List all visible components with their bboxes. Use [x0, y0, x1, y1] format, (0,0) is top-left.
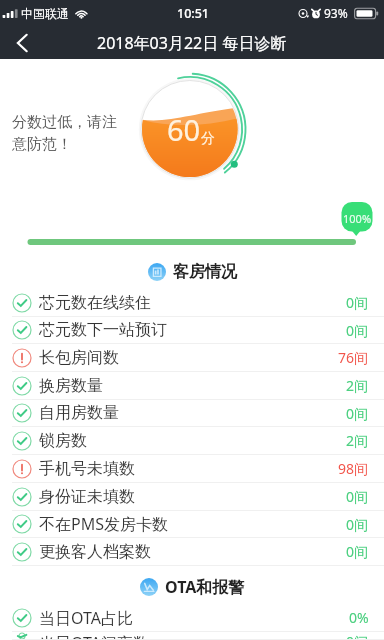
staticText: 手机号未填数: [39, 459, 135, 479]
button[interactable]: 不在PMS发房卡数: [0, 511, 384, 538]
staticText: 0间: [346, 487, 369, 506]
staticText: 芯元数下一站预订: [39, 320, 167, 340]
staticText: 身份证未填数: [39, 487, 135, 507]
staticText: 当日OTA占比: [39, 607, 134, 629]
staticText: 0%: [349, 608, 369, 627]
staticText: 10:51: [177, 5, 210, 22]
staticText: 分数过低，请注 意防范！: [12, 113, 117, 153]
staticText: 2间: [346, 376, 369, 395]
button[interactable]: 当日OTA间夜数: [0, 632, 384, 640]
staticText: 自用房数量: [39, 403, 119, 423]
staticText: 当日OTA间夜数: [39, 632, 150, 640]
staticText: 93%: [324, 5, 348, 21]
button[interactable]: 身份证未填数: [0, 483, 384, 511]
button[interactable]: 芯元数下一站预订: [0, 317, 384, 344]
button[interactable]: Back: [0, 26, 44, 59]
staticText: 0间: [346, 321, 369, 340]
staticText: 0间: [346, 515, 369, 534]
staticText: OTA和报警: [165, 576, 245, 598]
staticText: 100%: [343, 211, 372, 226]
staticText: 98间: [338, 459, 369, 478]
button[interactable]: 芯元数在线续住: [0, 289, 384, 317]
staticText: 换房数量: [39, 376, 103, 396]
button[interactable]: 当日OTA占比: [0, 604, 384, 632]
staticText: 2018年03月22日 每日诊断: [97, 32, 287, 54]
button[interactable]: 自用房数量: [0, 400, 384, 427]
button[interactable]: 锁房数: [0, 427, 384, 455]
staticText: 0间: [346, 542, 369, 561]
staticText: 长包房间数: [39, 348, 119, 368]
staticText: 客房情况: [173, 262, 237, 282]
staticText: 0间: [346, 632, 369, 640]
staticText: 更换客人档案数: [39, 542, 151, 562]
staticText: 76间: [338, 348, 369, 367]
staticText: 中国联通: [21, 6, 69, 21]
staticText: 2间: [346, 431, 369, 450]
button[interactable]: 手机号未填数: [0, 455, 384, 483]
staticText: 不在PMS发房卡数: [39, 513, 168, 535]
staticText: 0间: [346, 404, 369, 423]
staticText: 分: [201, 130, 215, 148]
staticText: 芯元数在线续住: [39, 293, 151, 313]
button[interactable]: 长包房间数: [0, 344, 384, 372]
staticText: 0间: [346, 293, 369, 312]
button[interactable]: 更换客人档案数: [0, 538, 384, 566]
staticText: 锁房数: [39, 431, 87, 451]
staticText: 60: [167, 110, 201, 149]
button[interactable]: 换房数量: [0, 372, 384, 400]
